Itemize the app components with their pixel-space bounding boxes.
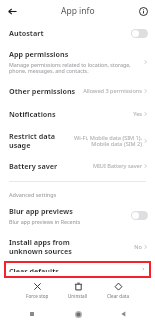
button[interactable]: Uninstall xyxy=(66,281,90,300)
staticText: Wi-Fi, Mobile data (SIM 1), Mobile data … xyxy=(73,134,142,148)
button[interactable]: Restrict data usage xyxy=(0,125,155,155)
staticText: Allowed 3 permissions xyxy=(82,87,142,95)
staticText: Restrict data usage xyxy=(9,131,73,150)
staticText: Uninstall xyxy=(68,293,88,299)
staticText: MIUI Battery saver xyxy=(82,162,142,170)
staticText: Install apps from unknown sources xyxy=(9,237,82,256)
staticText: Clear data xyxy=(107,293,129,299)
staticText: Clear defaults xyxy=(9,266,59,272)
button[interactable]: App permissions xyxy=(0,43,155,79)
button[interactable]: Battery saver xyxy=(0,155,155,178)
staticText: Battery saver xyxy=(9,161,82,171)
button[interactable]: Autostart xyxy=(0,21,155,43)
button[interactable]: Blur app previews xyxy=(0,205,155,231)
button[interactable]: Toggle xyxy=(131,211,148,220)
staticText: Other permissions xyxy=(9,86,82,96)
staticText: Force stop xyxy=(26,293,49,299)
staticText: Blur app previews in Recents xyxy=(9,218,81,225)
button[interactable]: Clear defaults xyxy=(4,261,151,278)
button[interactable]: Back xyxy=(4,3,20,19)
button[interactable]: Recents xyxy=(9,305,55,323)
button[interactable]: Home xyxy=(55,305,101,323)
staticText: Blur app previews xyxy=(9,206,73,216)
button[interactable]: Other permissions xyxy=(0,79,155,102)
staticText: Notifications xyxy=(9,109,82,119)
staticText: Autostart xyxy=(9,28,44,38)
button[interactable]: Toggle xyxy=(131,29,148,38)
button[interactable]: Install apps from unknown sources xyxy=(0,231,155,261)
staticText: Yes xyxy=(82,110,142,118)
staticText: Advanced settings xyxy=(9,191,57,198)
button[interactable]: App details xyxy=(135,3,151,19)
staticText: No xyxy=(82,243,142,251)
button[interactable]: Clear data xyxy=(105,281,131,300)
button[interactable]: Force stop xyxy=(24,281,51,300)
staticText: App info xyxy=(61,5,95,17)
staticText: App permissions xyxy=(9,49,69,59)
button[interactable]: Notifications xyxy=(0,102,155,125)
button[interactable]: Back xyxy=(101,305,147,323)
staticText: Manage permissions related to location, … xyxy=(9,61,141,75)
